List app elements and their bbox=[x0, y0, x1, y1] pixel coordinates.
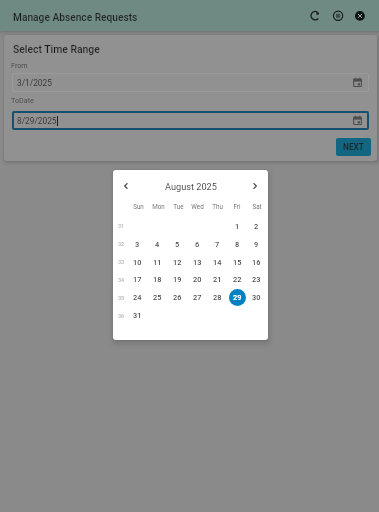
staticText: 3 bbox=[135, 240, 140, 249]
staticText: 33 bbox=[118, 259, 125, 265]
staticText: NEXT bbox=[343, 142, 364, 152]
button[interactable]: 18 bbox=[149, 271, 166, 288]
button[interactable]: 6 bbox=[189, 236, 206, 253]
staticText: 7 bbox=[215, 240, 220, 249]
staticText: August 2025 bbox=[165, 181, 217, 192]
button[interactable]: Stop bbox=[328, 6, 348, 26]
staticText: 4 bbox=[155, 240, 160, 249]
button[interactable]: 8/29/2025 bbox=[12, 111, 369, 130]
button[interactable]: 25 bbox=[149, 289, 166, 306]
button[interactable]: 10 bbox=[129, 254, 146, 271]
staticText: 35 bbox=[118, 295, 125, 301]
staticText: Mon bbox=[152, 203, 165, 210]
staticText: Manage Absence Requests bbox=[13, 12, 138, 24]
button[interactable]: 27 bbox=[189, 289, 206, 306]
staticText: Sat bbox=[252, 203, 262, 210]
staticText: Select Time Range bbox=[13, 43, 100, 55]
staticText: Fri bbox=[233, 203, 241, 210]
staticText: 16 bbox=[252, 258, 261, 267]
staticText: ToDate bbox=[11, 96, 34, 104]
staticText: 36 bbox=[118, 313, 125, 319]
button[interactable]: 21 bbox=[209, 271, 226, 288]
staticText: 8 bbox=[235, 240, 240, 249]
staticText: 5 bbox=[175, 240, 180, 249]
staticText: 11 bbox=[153, 258, 162, 267]
staticText: 25 bbox=[153, 293, 162, 302]
staticText: 21 bbox=[213, 275, 222, 284]
staticText: 34 bbox=[118, 277, 125, 283]
staticText: 12 bbox=[173, 258, 182, 267]
staticText: Sun bbox=[133, 203, 144, 210]
button[interactable]: 30 bbox=[248, 289, 265, 306]
staticText: 24 bbox=[133, 293, 142, 302]
staticText: 2 bbox=[254, 222, 259, 231]
button[interactable]: 9 bbox=[248, 236, 265, 253]
staticText: Wed bbox=[191, 203, 204, 210]
staticText: 18 bbox=[153, 275, 162, 284]
button[interactable]: 7 bbox=[209, 236, 226, 253]
staticText: 8/29/2025 bbox=[17, 116, 57, 126]
staticText: 29 bbox=[233, 293, 242, 302]
staticText: 26 bbox=[173, 293, 182, 302]
button[interactable]: 1 bbox=[229, 218, 246, 235]
staticText: Tue bbox=[173, 203, 184, 210]
staticText: 6 bbox=[195, 240, 200, 249]
staticText: 31 bbox=[118, 223, 125, 229]
staticText: 22 bbox=[233, 275, 242, 284]
staticText: 10 bbox=[133, 258, 142, 267]
button[interactable]: 12 bbox=[169, 254, 186, 271]
button[interactable]: 8 bbox=[229, 236, 246, 253]
button[interactable]: 13 bbox=[189, 254, 206, 271]
staticText: 31 bbox=[133, 311, 142, 320]
button[interactable]: Close bbox=[350, 6, 370, 26]
button[interactable]: 28 bbox=[209, 289, 226, 306]
button[interactable]: 23 bbox=[248, 271, 265, 288]
button[interactable]: 2 bbox=[248, 218, 265, 235]
staticText: 32 bbox=[118, 241, 125, 247]
staticText: 17 bbox=[133, 275, 142, 284]
staticText: Thu bbox=[212, 203, 223, 210]
staticText: 3/1/2025 bbox=[17, 78, 52, 88]
button[interactable]: 20 bbox=[189, 271, 206, 288]
button[interactable]: 5 bbox=[169, 236, 186, 253]
button[interactable]: Refresh bbox=[305, 6, 325, 26]
button[interactable]: 31 bbox=[129, 307, 146, 324]
button[interactable]: 3 bbox=[129, 236, 146, 253]
button[interactable]: 17 bbox=[129, 271, 146, 288]
button[interactable]: 19 bbox=[169, 271, 186, 288]
staticText: 14 bbox=[213, 258, 222, 267]
button[interactable]: 29 bbox=[229, 289, 246, 306]
staticText: 23 bbox=[252, 275, 261, 284]
staticText: 28 bbox=[213, 293, 222, 302]
button[interactable]: NEXT bbox=[336, 138, 371, 156]
staticText: 13 bbox=[193, 258, 202, 267]
staticText: 9 bbox=[254, 240, 259, 249]
staticText: 19 bbox=[173, 275, 182, 284]
staticText: From bbox=[11, 61, 28, 69]
button[interactable]: 14 bbox=[209, 254, 226, 271]
button[interactable]: 4 bbox=[149, 236, 166, 253]
button[interactable]: 15 bbox=[229, 254, 246, 271]
staticText: 27 bbox=[193, 293, 202, 302]
button[interactable]: 24 bbox=[129, 289, 146, 306]
button[interactable]: Previous month bbox=[118, 178, 134, 194]
button[interactable]: 22 bbox=[229, 271, 246, 288]
staticText: 1 bbox=[235, 222, 240, 231]
button[interactable]: 3/1/2025 bbox=[12, 73, 369, 92]
staticText: 20 bbox=[193, 275, 202, 284]
button[interactable]: 26 bbox=[169, 289, 186, 306]
button[interactable]: Next month bbox=[247, 178, 263, 194]
button[interactable]: 16 bbox=[248, 254, 265, 271]
button[interactable]: 11 bbox=[149, 254, 166, 271]
staticText: 30 bbox=[252, 293, 261, 302]
staticText: 15 bbox=[233, 258, 242, 267]
